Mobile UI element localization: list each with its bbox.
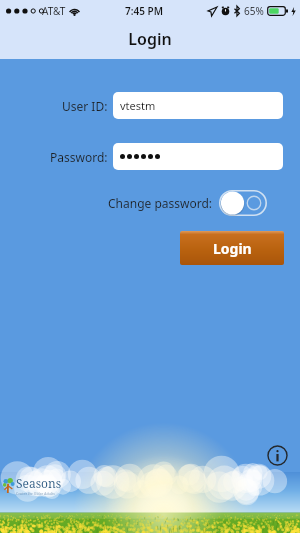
button[interactable]: vtestm [113, 92, 283, 119]
staticText: User ID: [62, 98, 108, 114]
button[interactable] [113, 143, 283, 170]
staticText: vtestm [120, 98, 156, 113]
staticText: Login [213, 239, 252, 258]
staticText: Login [128, 28, 172, 50]
button[interactable]: Login [180, 231, 284, 265]
staticText: Password: [50, 149, 108, 165]
staticText: 7:45 PM [125, 4, 163, 18]
staticText: Center for Older Adults [16, 491, 55, 496]
staticText: Change password: [108, 195, 213, 211]
staticText: AT&T [42, 4, 66, 18]
button[interactable]: Information [263, 441, 291, 469]
button[interactable]: Change password toggle [219, 190, 267, 216]
staticText: Seasons [16, 475, 62, 491]
staticText: 65% [244, 4, 264, 18]
